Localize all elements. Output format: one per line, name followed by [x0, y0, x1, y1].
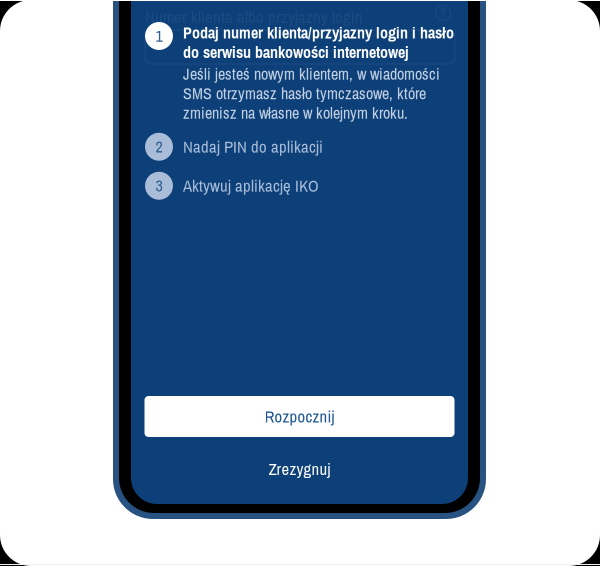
staticText: 2 [155, 136, 162, 158]
staticText: Rozpocznij [264, 405, 334, 428]
button[interactable]: Zrezygnuj [144, 454, 454, 484]
staticText: Nadaj PIN do aplikacji [183, 135, 323, 158]
staticText: Numer klienta albo przyjazny login [145, 6, 363, 28]
staticText: Zrezygnuj [268, 458, 330, 480]
staticText: 3 [155, 175, 162, 197]
staticText: 1 [155, 25, 162, 47]
staticText: Podaj numer klienta/przyjazny login i ha… [183, 22, 454, 63]
staticText: ? [440, 4, 446, 22]
button[interactable]: Pomoc [435, 5, 451, 21]
staticText: Jeśli jesteś nowym klientem, w wiadomośc… [183, 63, 440, 124]
button[interactable]: Rozpocznij [144, 396, 454, 437]
staticText: Aktywuj aplikację IKO [183, 174, 319, 197]
